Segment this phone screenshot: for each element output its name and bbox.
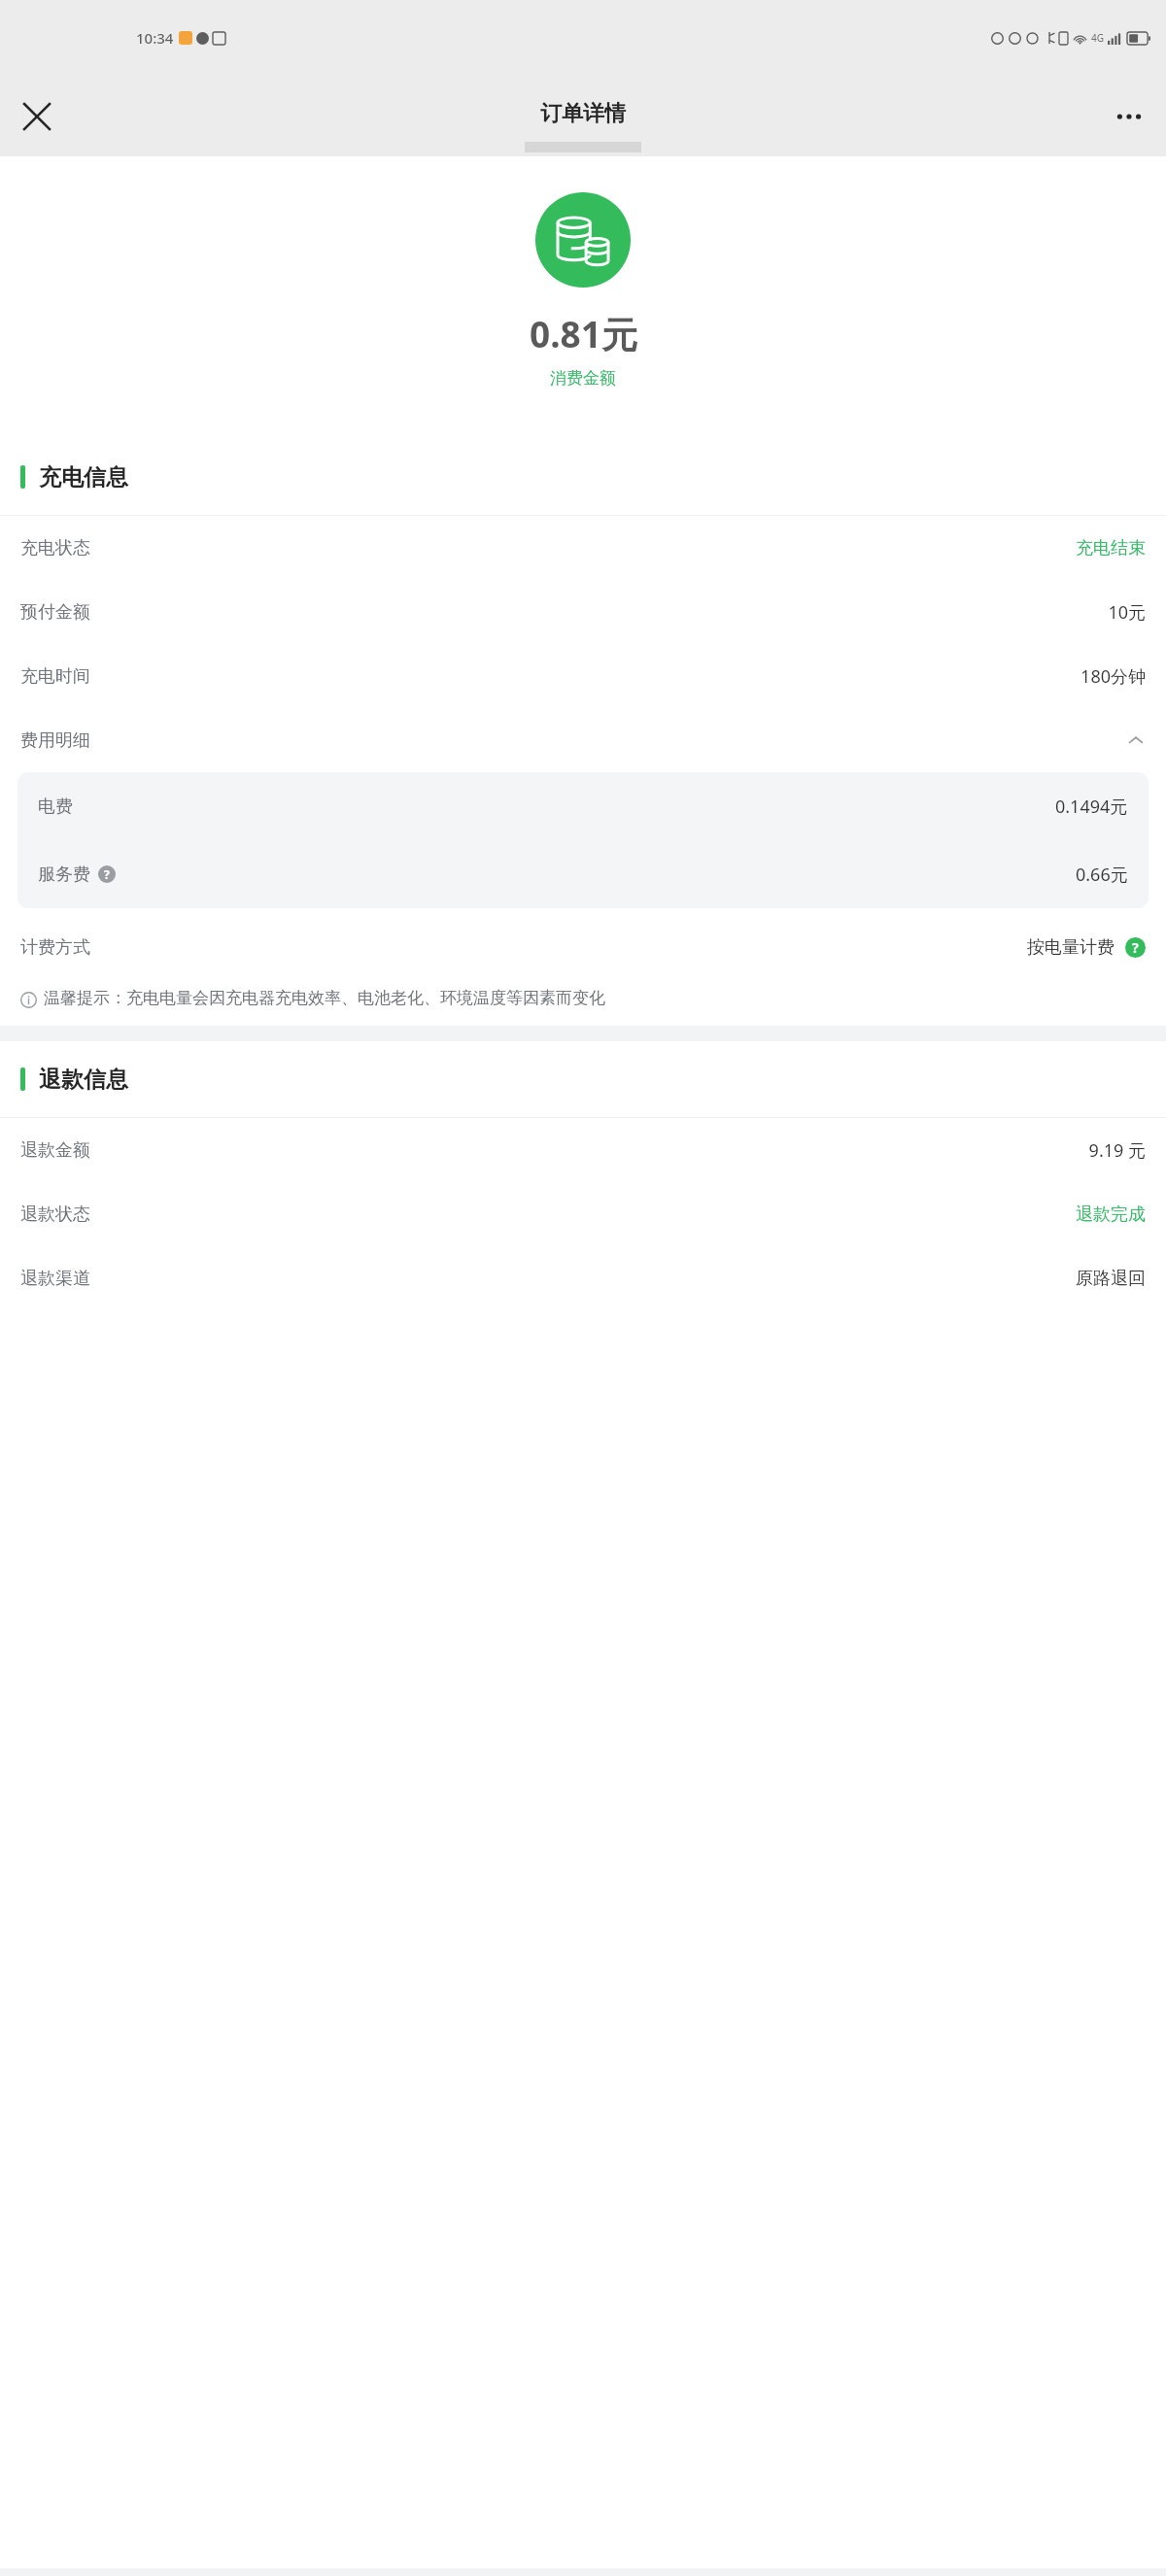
button[interactable]: 电费 xyxy=(17,772,1149,840)
staticText: 0.81元 xyxy=(530,309,637,358)
staticText: 4G xyxy=(1091,31,1104,45)
staticText: 退款渠道 xyxy=(20,1268,90,1290)
staticText: 订单详情 xyxy=(540,100,626,127)
staticText: 预付金额 xyxy=(20,601,90,624)
staticText: 0.66元 xyxy=(1076,863,1128,887)
staticText: 费用明细 xyxy=(20,729,90,752)
staticText: 按电量计费 xyxy=(1027,936,1115,959)
staticText: 9.19 元 xyxy=(1088,1138,1146,1163)
staticText: 退款完成 xyxy=(1076,1203,1146,1226)
staticText: 服务费 xyxy=(38,864,90,886)
button[interactable]: 退款金额 xyxy=(0,1118,1166,1182)
staticText: 退款状态 xyxy=(20,1203,90,1226)
button[interactable]: 费用明细 xyxy=(0,708,1166,772)
staticText: 电费 xyxy=(38,796,73,818)
staticText: ? xyxy=(1132,938,1139,957)
staticText: 10:34 xyxy=(136,28,174,48)
button[interactable]: 充电状态 xyxy=(0,516,1166,580)
staticText: 充电信息 xyxy=(39,463,128,491)
button[interactable]: Help xyxy=(98,865,116,883)
staticText: 计费方式 xyxy=(20,936,90,959)
button[interactable]: 充电时间 xyxy=(0,644,1166,708)
staticText: ? xyxy=(104,866,110,883)
staticText: 充电结束 xyxy=(1076,537,1146,559)
button[interactable]: 预付金额 xyxy=(0,580,1166,644)
staticText: 充电时间 xyxy=(20,665,90,688)
button[interactable]: 计费方式 xyxy=(0,908,1166,986)
other: Collapse xyxy=(1126,730,1146,750)
staticText: 退款金额 xyxy=(20,1139,90,1162)
button[interactable]: 服务费 xyxy=(17,840,1149,908)
button[interactable]: 退款渠道 xyxy=(0,1246,1166,1310)
button[interactable]: Close xyxy=(10,89,64,144)
staticText: 0.1494元 xyxy=(1055,795,1128,819)
staticText: 退款信息 xyxy=(39,1066,128,1094)
button[interactable]: Help xyxy=(1125,937,1146,958)
staticText: 温馨提示：充电电量会因充电器充电效率、电池老化、环境温度等因素而变化 xyxy=(44,988,605,1008)
staticText: 10元 xyxy=(1108,600,1146,625)
staticText: 充电状态 xyxy=(20,537,90,559)
button[interactable]: 退款状态 xyxy=(0,1182,1166,1246)
staticText: 180分钟 xyxy=(1080,664,1146,689)
staticText: 消费金额 xyxy=(550,368,616,389)
button[interactable]: More options xyxy=(1102,89,1156,144)
staticText: 原路退回 xyxy=(1076,1268,1146,1290)
